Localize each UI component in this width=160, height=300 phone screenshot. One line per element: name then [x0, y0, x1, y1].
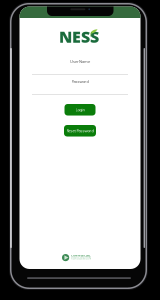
staticText: Login — [75, 107, 84, 112]
staticText: REFRIGERATION — [71, 257, 91, 260]
button[interactable]: Reset Password — [64, 125, 96, 136]
staticText: UserName — [70, 59, 90, 64]
staticText: COMMERCIAL — [71, 254, 90, 257]
staticText: NESS — [59, 26, 99, 47]
staticText: Password — [71, 79, 88, 84]
staticText: Reset Password — [66, 128, 93, 133]
button[interactable]: Login — [64, 104, 95, 115]
